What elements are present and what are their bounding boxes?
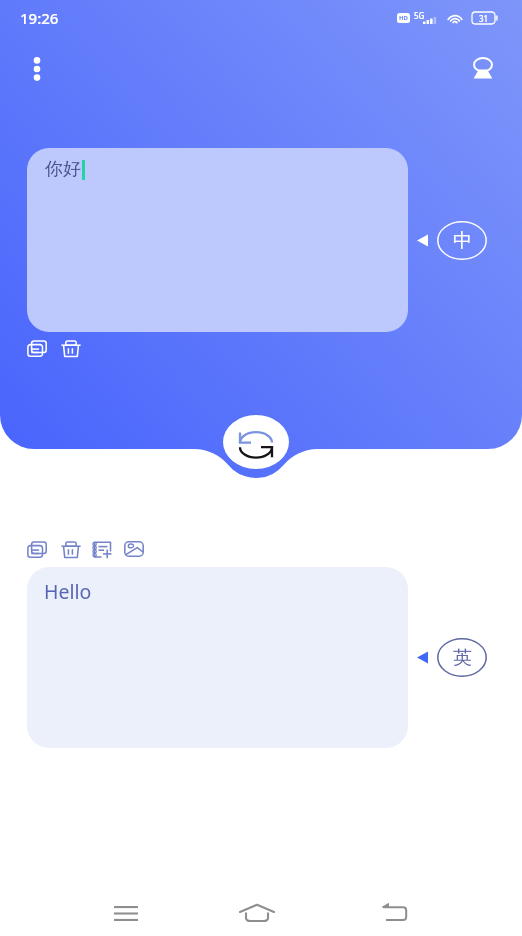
staticText: 中 [453, 229, 472, 253]
button[interactable]: Copy translation [27, 539, 47, 559]
staticText: 你好 [45, 158, 81, 181]
button[interactable]: Profile [461, 47, 505, 91]
button[interactable]: 你好 [27, 148, 408, 332]
button[interactable]: Language 英 [417, 637, 487, 677]
staticText: 19:26 [20, 8, 59, 28]
staticText: 5G [414, 10, 425, 21]
button[interactable]: Recent apps [102, 889, 150, 936]
button[interactable]: Delete translation [61, 539, 81, 559]
staticText: 英 [453, 646, 472, 670]
staticText: Hello [44, 578, 92, 605]
button[interactable]: Home [233, 889, 281, 936]
button[interactable]: More options [15, 47, 59, 91]
button[interactable]: Back [371, 889, 419, 936]
staticText: 31 [479, 13, 489, 24]
button[interactable]: Add to notebook [93, 539, 112, 559]
button[interactable]: Delete [61, 338, 81, 358]
button[interactable]: Copy [27, 338, 47, 358]
staticText: HD [399, 14, 408, 22]
button[interactable]: Language 中 [417, 220, 487, 260]
button[interactable]: Hello [27, 567, 408, 748]
button[interactable]: Swap languages [223, 415, 289, 469]
button[interactable]: Share image [124, 539, 144, 559]
